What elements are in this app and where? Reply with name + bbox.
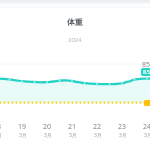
staticText: 3月 [69, 132, 77, 139]
staticText: 24 [143, 122, 150, 132]
staticText: 85 [142, 60, 150, 70]
other: Weight trend chart [0, 0, 150, 150]
staticText: 21 [68, 122, 77, 132]
staticText: 3月 [44, 132, 52, 139]
button[interactable]: 21 [60, 122, 84, 142]
button[interactable]: Goal weight [144, 100, 150, 106]
staticText: 3月 [19, 132, 27, 139]
button[interactable]: 24 [135, 122, 150, 142]
button[interactable]: 85 [141, 68, 150, 76]
staticText: 3月 [119, 132, 127, 139]
staticText: 18 [0, 122, 2, 132]
button[interactable]: 23 [110, 122, 134, 142]
staticText: 19 [18, 122, 27, 132]
staticText: 3月 [94, 132, 102, 139]
staticText: 2024 [68, 36, 82, 44]
staticText: 3月 [144, 132, 150, 139]
staticText: 体重 [67, 17, 83, 27]
button[interactable]: 20 [35, 122, 59, 142]
button[interactable]: 22 [85, 122, 109, 142]
button[interactable]: 19 [10, 122, 34, 142]
staticText: 22 [93, 122, 102, 132]
staticText: 85 [143, 68, 150, 76]
staticText: 3月 [0, 132, 2, 139]
button[interactable]: 体重 [0, 16, 150, 28]
staticText: 23 [118, 122, 127, 132]
staticText: 20 [43, 122, 52, 132]
button[interactable]: 18 [0, 122, 9, 142]
